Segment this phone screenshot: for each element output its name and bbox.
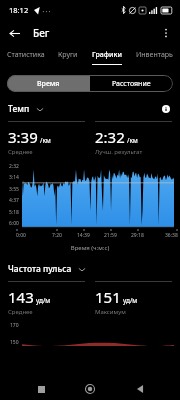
staticText: 143 bbox=[8, 287, 34, 307]
button[interactable]: Инвентарь bbox=[128, 46, 180, 70]
staticText: Среднее bbox=[8, 308, 33, 316]
staticText: Максимум bbox=[95, 308, 126, 316]
staticText: уд/м bbox=[36, 296, 51, 305]
staticText: Время (ч:м:с) bbox=[0, 244, 180, 252]
button[interactable]: Недавние приложения bbox=[32, 380, 50, 398]
button[interactable]: Темп bbox=[8, 103, 44, 115]
staticText: 3:14 bbox=[9, 174, 19, 181]
button[interactable]: Статистика bbox=[0, 46, 51, 70]
staticText: Инвентарь bbox=[136, 50, 173, 60]
staticText: 6:00 bbox=[9, 220, 19, 227]
staticText: 3:39 bbox=[8, 127, 38, 147]
staticText: 2:32 bbox=[95, 127, 125, 147]
staticText: 29:18 bbox=[131, 232, 144, 239]
staticText: 2:32 bbox=[9, 163, 19, 170]
button[interactable]: 3:39 bbox=[8, 121, 85, 156]
staticText: Расстояние bbox=[112, 79, 151, 89]
staticText: 150 bbox=[10, 339, 19, 346]
staticText: 21:59 bbox=[104, 232, 117, 239]
staticText: Среднее bbox=[8, 148, 33, 156]
staticText: 36:38 bbox=[165, 232, 178, 239]
button[interactable]: Круги bbox=[51, 46, 85, 70]
staticText: /км bbox=[40, 136, 51, 145]
staticText: 18:12 bbox=[9, 5, 29, 15]
staticText: 0:00 bbox=[16, 232, 26, 239]
staticText: Лучш. результат bbox=[95, 148, 143, 156]
staticText: Темп bbox=[8, 103, 30, 115]
button[interactable]: Частота пульса bbox=[8, 263, 86, 275]
button[interactable]: Ещё bbox=[156, 23, 176, 43]
button[interactable]: 143 bbox=[8, 281, 85, 316]
staticText: 151 bbox=[95, 287, 121, 307]
button[interactable]: 2:32 bbox=[95, 121, 172, 156]
staticText: Круги bbox=[58, 50, 78, 60]
button[interactable]: Главный экран bbox=[81, 380, 99, 398]
staticText: Время bbox=[37, 79, 60, 89]
staticText: Графики bbox=[92, 50, 122, 60]
staticText: уд/м bbox=[123, 296, 138, 305]
staticText: 4:37 bbox=[9, 197, 19, 204]
staticText: Частота пульса bbox=[8, 263, 72, 275]
button[interactable]: Графики bbox=[85, 46, 128, 70]
staticText: /км bbox=[127, 136, 138, 145]
staticText: 5:18 bbox=[9, 209, 19, 216]
staticText: Бег bbox=[33, 26, 50, 40]
staticText: 14:39 bbox=[77, 232, 90, 239]
button[interactable]: Назад bbox=[131, 380, 149, 398]
button[interactable]: Информация bbox=[160, 103, 172, 115]
staticText: Статистика bbox=[7, 50, 45, 60]
button[interactable]: Время bbox=[7, 75, 90, 92]
staticText: 7:20 bbox=[52, 232, 62, 239]
staticText: 3:55 bbox=[9, 186, 19, 193]
staticText: 170 bbox=[10, 322, 19, 329]
button[interactable]: Назад bbox=[4, 23, 24, 43]
button[interactable]: Расстояние bbox=[90, 75, 173, 92]
button[interactable]: 151 bbox=[95, 281, 172, 316]
